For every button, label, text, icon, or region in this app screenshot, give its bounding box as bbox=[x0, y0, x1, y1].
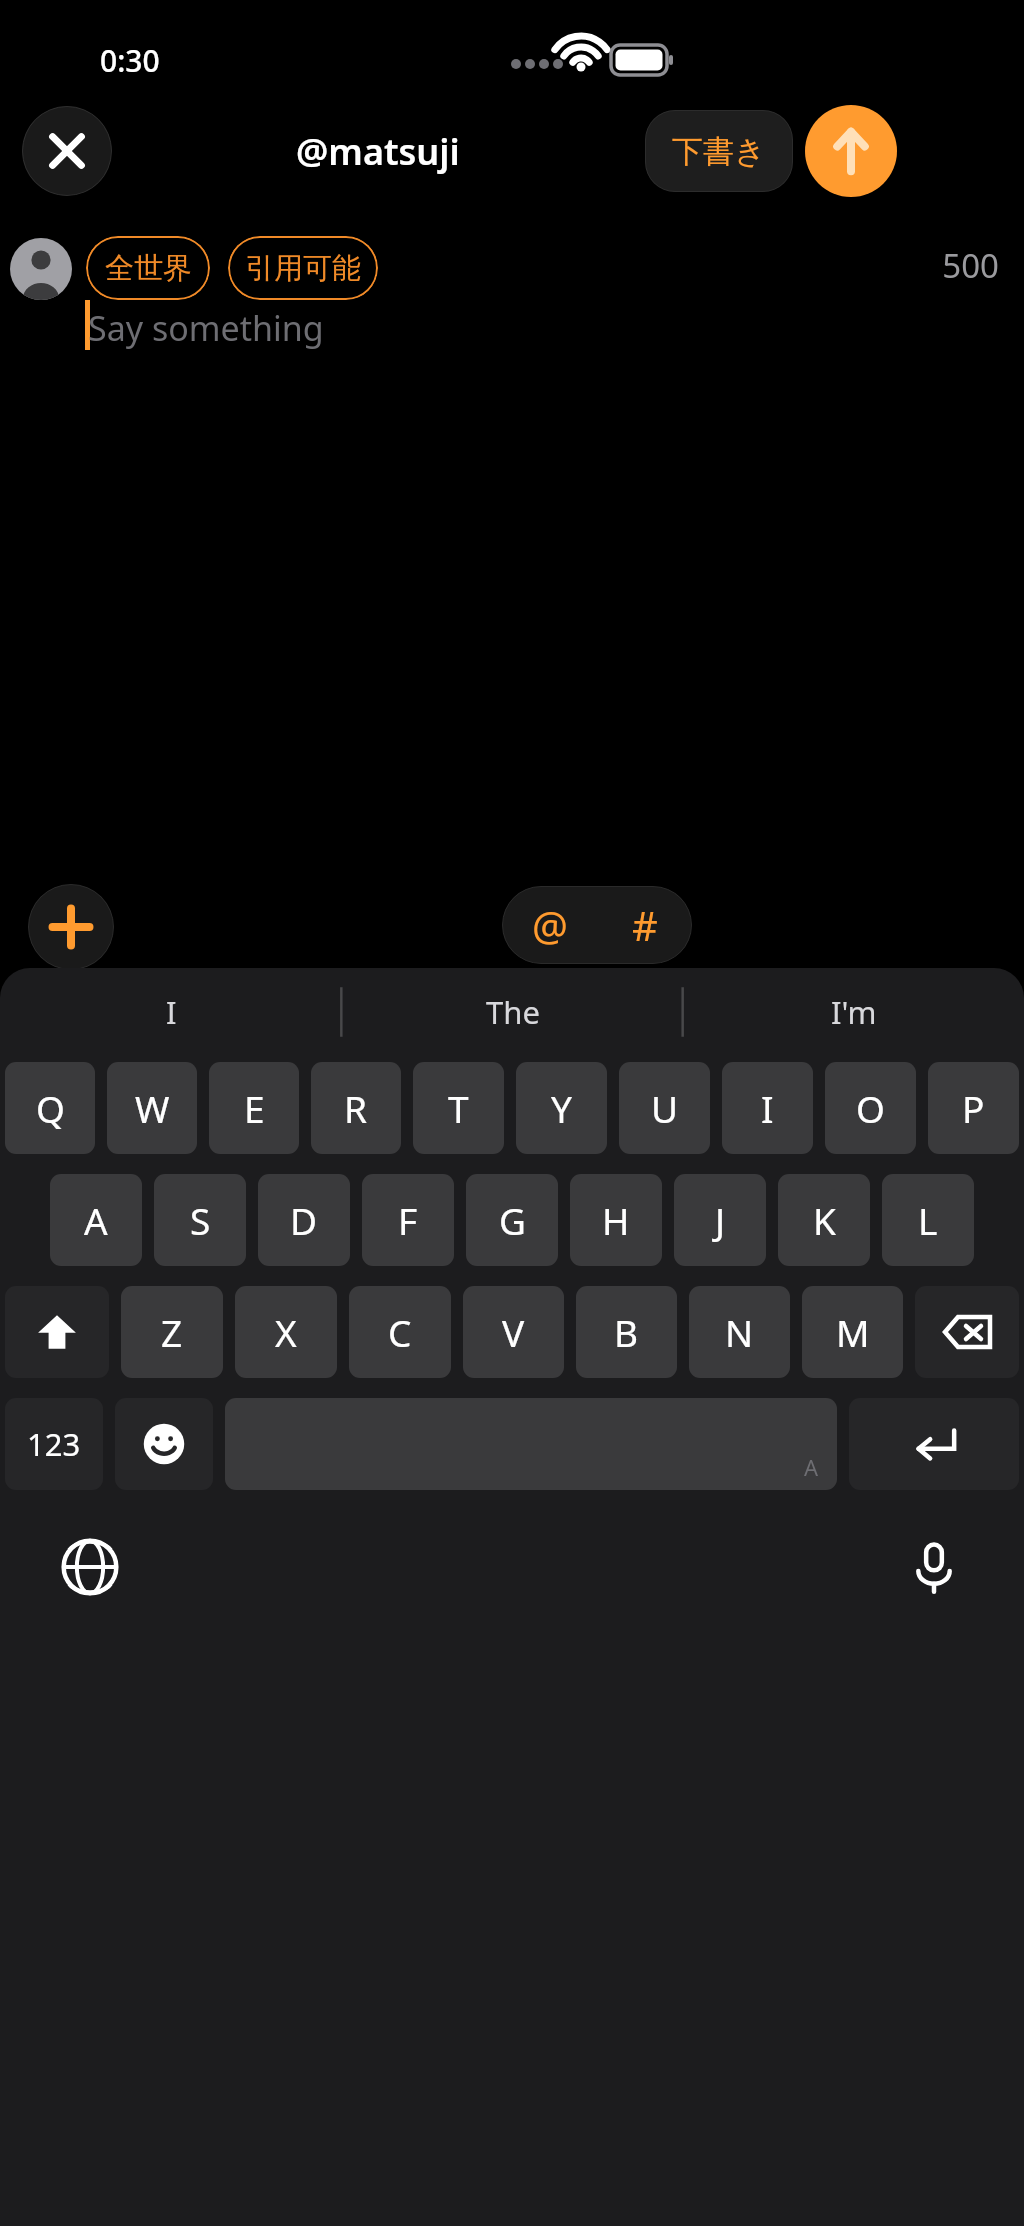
staticText: I bbox=[761, 1083, 774, 1133]
button[interactable]: N bbox=[689, 1286, 790, 1378]
staticText: S bbox=[190, 1195, 211, 1245]
staticText: L bbox=[918, 1195, 938, 1245]
staticText: A bbox=[804, 1452, 819, 1482]
button[interactable]: A bbox=[50, 1174, 142, 1266]
button[interactable]: Close bbox=[22, 106, 112, 196]
button[interactable]: 全世界 bbox=[86, 236, 210, 300]
staticText: C bbox=[388, 1307, 412, 1357]
button[interactable]: @matsuji bbox=[296, 127, 460, 176]
staticText: The bbox=[486, 991, 540, 1033]
staticText: A bbox=[84, 1195, 108, 1245]
button[interactable]: Profile bbox=[10, 238, 72, 300]
button[interactable]: B bbox=[576, 1286, 677, 1378]
button[interactable]: R bbox=[311, 1062, 401, 1154]
button[interactable]: V bbox=[463, 1286, 564, 1378]
staticText: W bbox=[135, 1083, 170, 1133]
button[interactable]: P bbox=[928, 1062, 1019, 1154]
button[interactable]: Hashtag bbox=[597, 886, 692, 964]
button[interactable]: Return bbox=[849, 1398, 1019, 1490]
staticText: F bbox=[398, 1195, 418, 1245]
staticText: Say something bbox=[88, 305, 324, 351]
staticText: 0:30 bbox=[100, 40, 160, 81]
button[interactable]: Backspace bbox=[915, 1286, 1019, 1378]
button[interactable]: C bbox=[349, 1286, 451, 1378]
button[interactable]: 引用可能 bbox=[228, 236, 378, 300]
staticText: @ bbox=[532, 898, 568, 952]
button[interactable]: E bbox=[209, 1062, 299, 1154]
staticText: O bbox=[856, 1083, 885, 1133]
button[interactable]: S bbox=[154, 1174, 246, 1266]
button[interactable]: I bbox=[0, 968, 342, 1056]
staticText: 引用可能 bbox=[245, 250, 361, 287]
button[interactable]: K bbox=[778, 1174, 870, 1266]
button[interactable]: Change keyboard language bbox=[50, 1527, 130, 1607]
button[interactable]: Y bbox=[516, 1062, 607, 1154]
staticText: D bbox=[290, 1195, 318, 1245]
staticText: P bbox=[962, 1083, 985, 1133]
button[interactable]: Voice input bbox=[894, 1527, 974, 1607]
staticText: I'm bbox=[831, 991, 877, 1033]
staticText: G bbox=[499, 1195, 526, 1245]
staticText: V bbox=[502, 1307, 525, 1357]
staticText: 下書き bbox=[672, 132, 766, 171]
staticText: @matsuji bbox=[296, 127, 460, 176]
button[interactable]: J bbox=[674, 1174, 766, 1266]
button[interactable]: Q bbox=[5, 1062, 95, 1154]
button[interactable]: L bbox=[882, 1174, 974, 1266]
staticText: N bbox=[725, 1307, 754, 1357]
staticText: M bbox=[836, 1307, 870, 1357]
staticText: X bbox=[275, 1307, 297, 1357]
button[interactable]: Mention bbox=[502, 886, 597, 964]
button[interactable]: W bbox=[107, 1062, 197, 1154]
staticText: U bbox=[651, 1083, 679, 1133]
button[interactable]: F bbox=[362, 1174, 454, 1266]
button[interactable]: Shift bbox=[5, 1286, 109, 1378]
staticText: 123 bbox=[27, 1423, 81, 1465]
button[interactable]: Add attachment bbox=[28, 884, 114, 970]
button[interactable]: H bbox=[570, 1174, 662, 1266]
button[interactable]: O bbox=[825, 1062, 916, 1154]
button[interactable]: X bbox=[235, 1286, 337, 1378]
staticText: R bbox=[344, 1083, 368, 1133]
button[interactable]: M bbox=[802, 1286, 903, 1378]
staticText: 全世界 bbox=[105, 250, 192, 287]
button[interactable]: G bbox=[466, 1174, 558, 1266]
button[interactable]: I bbox=[722, 1062, 813, 1154]
button[interactable]: T bbox=[413, 1062, 504, 1154]
staticText: # bbox=[632, 898, 658, 952]
staticText: Z bbox=[161, 1307, 183, 1357]
staticText: T bbox=[448, 1083, 469, 1133]
button[interactable]: The bbox=[342, 968, 683, 1056]
staticText: Y bbox=[551, 1083, 572, 1133]
staticText: B bbox=[614, 1307, 639, 1357]
button[interactable]: I'm bbox=[683, 968, 1024, 1056]
staticText: J bbox=[715, 1195, 726, 1245]
staticText: E bbox=[244, 1083, 265, 1133]
button[interactable]: Post bbox=[805, 105, 897, 197]
button[interactable]: 123 bbox=[5, 1398, 103, 1490]
staticText: K bbox=[813, 1195, 836, 1245]
button[interactable]: U bbox=[619, 1062, 710, 1154]
staticText: Q bbox=[36, 1083, 65, 1133]
staticText: H bbox=[602, 1195, 630, 1245]
button[interactable]: Z bbox=[121, 1286, 223, 1378]
staticText: 500 bbox=[659, 243, 999, 288]
staticText: I bbox=[166, 991, 177, 1033]
button[interactable]: 下書き bbox=[645, 110, 793, 192]
button[interactable]: D bbox=[258, 1174, 350, 1266]
button[interactable]: Emoji bbox=[115, 1398, 213, 1490]
